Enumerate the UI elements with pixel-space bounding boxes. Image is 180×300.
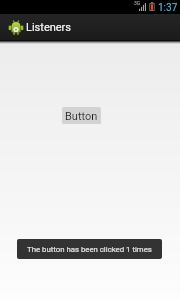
button[interactable]: Button bbox=[62, 107, 101, 124]
staticText: The button has been clicked 1 times bbox=[27, 245, 152, 254]
staticText: 3G bbox=[134, 0, 141, 6]
staticText: Button bbox=[65, 110, 98, 123]
staticText: Listeners bbox=[26, 21, 72, 34]
staticText: 1:37 bbox=[158, 2, 178, 14]
